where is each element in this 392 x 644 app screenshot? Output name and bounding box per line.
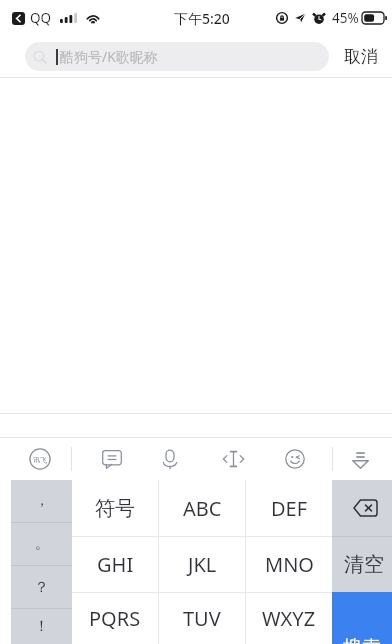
button[interactable]: 酷狗号/K歌昵称 — [25, 42, 329, 71]
staticText: 取消 — [344, 46, 378, 67]
staticText: ？ — [34, 578, 49, 597]
staticText: MNO — [265, 551, 314, 578]
button[interactable]: ， — [11, 480, 72, 522]
button[interactable]: Hide keyboard — [333, 438, 392, 480]
staticText: ABC — [183, 495, 222, 522]
staticText: JKL — [188, 551, 217, 578]
button[interactable]: MNO — [246, 537, 332, 592]
button[interactable]: Phrases — [72, 438, 154, 480]
button[interactable]: JKL — [159, 537, 245, 592]
button[interactable]: Input method — [0, 438, 71, 480]
button[interactable]: Emoji — [280, 438, 310, 480]
staticText: 符号 — [95, 496, 135, 521]
button[interactable]: DEF — [246, 480, 332, 536]
staticText: ， — [35, 492, 49, 510]
button[interactable]: PQRS — [72, 593, 158, 644]
button[interactable]: TUV — [159, 593, 245, 644]
staticText: GHI — [97, 551, 134, 578]
button[interactable]: ？ — [11, 566, 72, 608]
button[interactable]: Move cursor — [186, 438, 280, 480]
button[interactable]: WXYZ — [246, 593, 332, 644]
staticText: 下午5:20 — [174, 9, 230, 28]
staticText: 。 — [35, 535, 49, 553]
button[interactable]: ！ — [11, 609, 72, 644]
staticText: DEF — [271, 495, 308, 522]
staticText: QQ — [30, 9, 52, 27]
button[interactable]: GHI — [72, 537, 158, 592]
button[interactable]: ABC — [159, 480, 245, 536]
staticText: PQRS — [89, 605, 141, 632]
button[interactable]: Voice input — [154, 438, 186, 480]
button[interactable]: 符号 — [72, 480, 158, 536]
staticText: 45% — [332, 9, 359, 27]
button[interactable]: Backspace — [332, 480, 392, 536]
button[interactable]: 清空 — [332, 537, 392, 592]
staticText: 酷狗号/K歌昵称 — [60, 47, 158, 66]
button[interactable]: 取消 — [329, 36, 392, 77]
staticText: 讯飞 — [33, 455, 47, 464]
staticText: WXYZ — [262, 605, 316, 632]
staticText: TUV — [183, 605, 221, 632]
staticText: 搜索 — [343, 636, 381, 644]
button[interactable]: 搜索 — [332, 592, 392, 644]
staticText: 清空 — [344, 552, 384, 577]
staticText: ！ — [34, 617, 49, 636]
button[interactable]: 。 — [11, 523, 72, 565]
